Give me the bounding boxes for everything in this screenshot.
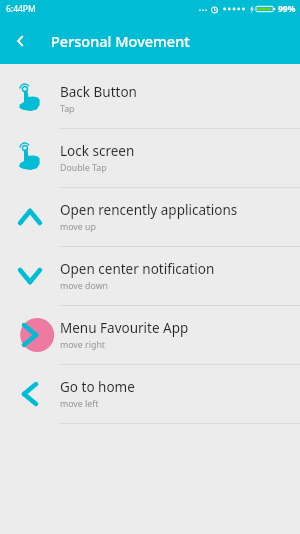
button[interactable]: Back Button	[0, 70, 300, 129]
staticText: move up	[60, 221, 96, 233]
staticText: Double Tap	[60, 162, 107, 174]
button[interactable]: Go to home	[0, 365, 300, 424]
button[interactable]: Back	[0, 20, 42, 62]
staticText: Open center notification	[60, 260, 215, 278]
staticText: Personal Movement	[51, 31, 190, 51]
staticText: Back Button	[60, 83, 137, 101]
staticText: move down	[60, 280, 108, 292]
button[interactable]: Menu Favourite App	[0, 306, 300, 365]
staticText: 6:44PM	[6, 3, 36, 15]
button[interactable]: Open center notification	[0, 247, 300, 306]
staticText: move left	[60, 398, 99, 410]
staticText: Menu Favourite App	[60, 319, 189, 337]
staticText: Open rencently applications	[60, 201, 238, 219]
staticText: move right	[60, 339, 106, 351]
button[interactable]: Lock screen	[0, 129, 300, 188]
staticText: 99%	[278, 3, 296, 15]
staticText: Go to home	[60, 378, 135, 396]
button[interactable]: Open rencently applications	[0, 188, 300, 247]
staticText: Lock screen	[60, 142, 135, 160]
staticText: Tap	[60, 103, 75, 115]
